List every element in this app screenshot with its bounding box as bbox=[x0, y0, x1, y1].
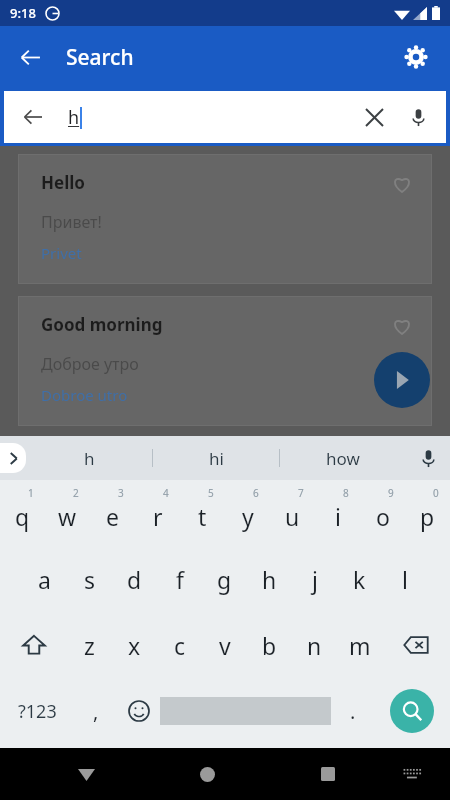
staticText: y bbox=[242, 501, 254, 532]
staticText: l bbox=[402, 564, 408, 595]
staticText: Good morning bbox=[41, 313, 163, 336]
staticText: hi bbox=[209, 447, 224, 470]
button[interactable]: hi bbox=[153, 436, 279, 480]
staticText: v bbox=[219, 630, 231, 661]
staticText: 9:18 bbox=[10, 4, 36, 22]
button[interactable]: Back bbox=[6, 33, 54, 81]
staticText: o bbox=[376, 501, 390, 532]
button[interactable]: Play bbox=[374, 352, 430, 408]
staticText: w bbox=[58, 501, 77, 532]
button[interactable]: . bbox=[331, 678, 374, 744]
button[interactable]: Switch keyboard bbox=[392, 754, 432, 794]
staticText: m bbox=[349, 630, 371, 661]
button[interactable]: Settings bbox=[392, 33, 440, 81]
staticText: 6 bbox=[253, 486, 259, 500]
button[interactable]: x bbox=[112, 612, 157, 678]
button[interactable]: Back bbox=[12, 96, 54, 138]
staticText: r bbox=[153, 501, 163, 532]
button[interactable]: Recents bbox=[304, 750, 352, 798]
button[interactable]: Good morning bbox=[19, 297, 431, 425]
button[interactable]: l bbox=[382, 546, 427, 612]
button[interactable]: Home bbox=[183, 750, 231, 798]
button[interactable]: k bbox=[337, 546, 382, 612]
staticText: ?123 bbox=[18, 699, 57, 724]
button[interactable]: z bbox=[67, 612, 112, 678]
button[interactable]: s bbox=[67, 546, 112, 612]
staticText: f bbox=[176, 564, 184, 595]
button[interactable]: 2 bbox=[45, 480, 90, 546]
button[interactable]: c bbox=[157, 612, 202, 678]
button[interactable]: Hide keyboard bbox=[62, 750, 110, 798]
button[interactable]: h bbox=[247, 546, 292, 612]
staticText: , bbox=[93, 698, 99, 725]
staticText: k bbox=[353, 564, 366, 595]
button[interactable]: Emoji bbox=[117, 678, 160, 744]
staticText: j bbox=[312, 564, 318, 595]
button[interactable]: ?123 bbox=[0, 678, 75, 744]
staticText: Privet bbox=[41, 243, 82, 263]
staticText: h bbox=[68, 105, 80, 130]
button[interactable]: 5 bbox=[180, 480, 225, 546]
button[interactable]: j bbox=[292, 546, 337, 612]
button[interactable]: Voice input bbox=[406, 436, 450, 480]
button[interactable]: Shift bbox=[0, 612, 67, 678]
button[interactable]: Search bbox=[390, 689, 434, 733]
staticText: Search bbox=[66, 43, 134, 72]
button[interactable]: h bbox=[26, 436, 152, 480]
staticText: how bbox=[326, 447, 360, 470]
button[interactable]: 9 bbox=[360, 480, 405, 546]
button[interactable]: Back bbox=[4, 91, 446, 143]
staticText: a bbox=[38, 564, 51, 595]
staticText: e bbox=[106, 501, 119, 532]
button[interactable]: v bbox=[202, 612, 247, 678]
button[interactable]: Favorite bbox=[389, 313, 415, 339]
button[interactable]: 1 bbox=[0, 480, 45, 546]
staticText: Привет! bbox=[41, 211, 102, 233]
staticText: c bbox=[174, 630, 186, 661]
staticText: h bbox=[84, 447, 95, 470]
button[interactable]: n bbox=[292, 612, 337, 678]
staticText: 2 bbox=[73, 486, 79, 500]
button[interactable]: 7 bbox=[270, 480, 315, 546]
staticText: Dobroe utro bbox=[41, 385, 128, 405]
staticText: x bbox=[128, 630, 141, 661]
staticText: . bbox=[350, 698, 356, 725]
staticText: s bbox=[84, 564, 96, 595]
button[interactable]: 8 bbox=[315, 480, 360, 546]
staticText: 5 bbox=[208, 486, 214, 500]
staticText: 4 bbox=[163, 486, 169, 500]
staticText: q bbox=[15, 501, 30, 532]
staticText: h bbox=[262, 564, 277, 595]
button[interactable]: m bbox=[337, 612, 382, 678]
staticText: 1 bbox=[28, 486, 34, 500]
button[interactable]: 3 bbox=[90, 480, 135, 546]
button[interactable]: , bbox=[75, 678, 117, 744]
staticText: g bbox=[217, 564, 232, 595]
button[interactable]: Hello bbox=[19, 155, 431, 283]
staticText: i bbox=[335, 501, 341, 532]
staticText: 8 bbox=[343, 486, 349, 500]
button[interactable]: Clear bbox=[354, 97, 394, 137]
staticText: 3 bbox=[118, 486, 124, 500]
staticText: b bbox=[262, 630, 277, 661]
button[interactable]: how bbox=[280, 436, 406, 480]
button[interactable]: d bbox=[112, 546, 157, 612]
staticText: u bbox=[285, 501, 300, 532]
staticText: 9 bbox=[388, 486, 394, 500]
button[interactable]: b bbox=[247, 612, 292, 678]
button[interactable]: More suggestions bbox=[0, 443, 26, 473]
button[interactable]: 0 bbox=[405, 480, 450, 546]
button[interactable]: Backspace bbox=[382, 612, 450, 678]
button[interactable]: 6 bbox=[225, 480, 270, 546]
button[interactable]: a bbox=[22, 546, 67, 612]
button[interactable]: 4 bbox=[135, 480, 180, 546]
staticText: z bbox=[84, 630, 95, 661]
button[interactable]: f bbox=[157, 546, 202, 612]
staticText: 7 bbox=[298, 486, 304, 500]
button[interactable]: g bbox=[202, 546, 247, 612]
staticText: p bbox=[420, 501, 435, 532]
button[interactable]: Favorite bbox=[389, 171, 415, 197]
staticText: d bbox=[127, 564, 142, 595]
button[interactable]: Voice search bbox=[398, 97, 438, 137]
